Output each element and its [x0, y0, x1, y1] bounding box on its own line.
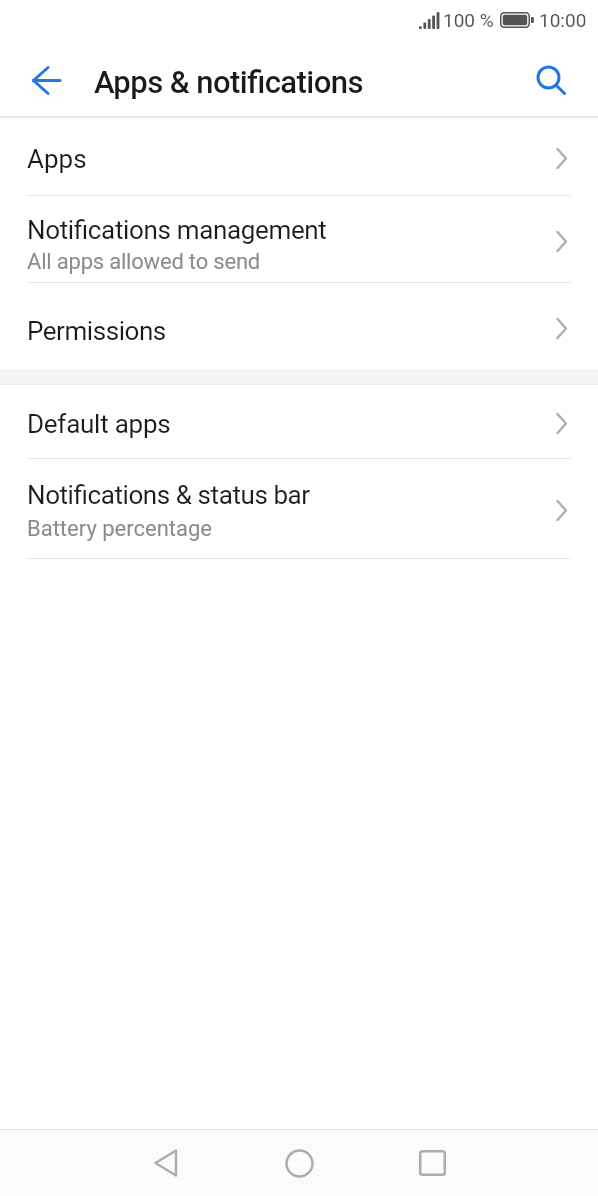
button[interactable]: [408, 1139, 456, 1187]
button[interactable]: Notifications management: [0, 196, 598, 282]
button[interactable]: Apps: [0, 118, 598, 195]
button[interactable]: [18, 52, 74, 108]
staticText: Apps: [27, 144, 87, 174]
staticText: Apps & notifications: [94, 64, 364, 100]
button[interactable]: Permissions: [0, 283, 598, 370]
staticText: Notifications management: [27, 215, 327, 245]
staticText: 100 %: [443, 9, 494, 31]
staticText: Notifications & status bar: [27, 480, 310, 510]
button[interactable]: Default apps: [0, 385, 598, 458]
staticText: Default apps: [27, 409, 171, 439]
staticText: Permissions: [27, 316, 166, 346]
staticText: 10:00: [539, 9, 587, 31]
staticText: All apps allowed to send: [27, 249, 261, 275]
button[interactable]: [523, 52, 579, 108]
button[interactable]: Notifications & status bar: [0, 459, 598, 558]
button[interactable]: [275, 1139, 323, 1187]
button[interactable]: [142, 1139, 190, 1187]
staticText: Battery percentage: [27, 516, 213, 542]
